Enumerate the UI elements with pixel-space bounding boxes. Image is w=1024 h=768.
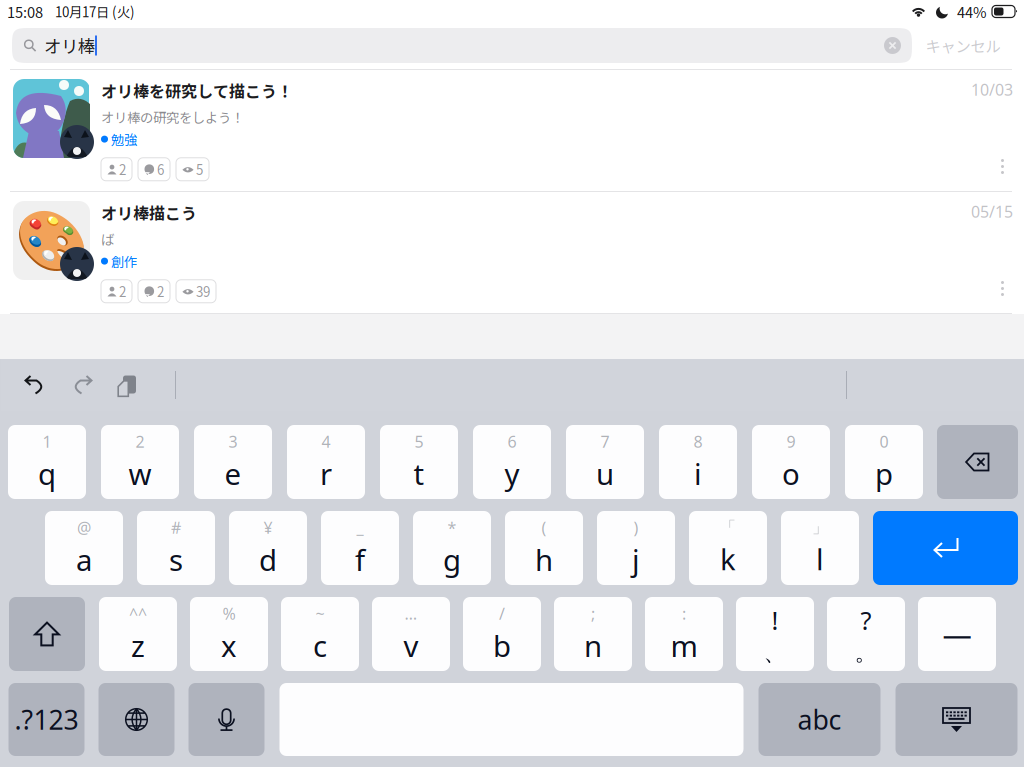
button[interactable]: :: [645, 597, 723, 671]
button[interactable]: Next keyboard: [98, 683, 174, 756]
button[interactable]: ¥: [229, 511, 307, 585]
staticText: 勉強: [111, 129, 137, 149]
button[interactable]: Return: [873, 511, 1018, 585]
staticText: ;: [591, 603, 595, 624]
button[interactable]: 9: [752, 425, 830, 499]
button[interactable]: Delete: [937, 425, 1018, 499]
staticText: キャンセル: [925, 34, 1000, 57]
button[interactable]: —: [918, 597, 996, 671]
staticText: s: [169, 540, 183, 579]
staticText: 9: [786, 431, 795, 452]
button[interactable]: 6: [473, 425, 551, 499]
staticText: 39: [196, 282, 210, 301]
staticText: オリ棒を研究して描こう！: [101, 79, 293, 102]
staticText: g: [443, 540, 461, 579]
staticText: 10月17日 (火): [55, 2, 135, 21]
staticText: !: [771, 603, 778, 637]
staticText: r: [320, 454, 332, 493]
button[interactable]: 0: [845, 425, 923, 499]
button[interactable]: 4: [287, 425, 365, 499]
button[interactable]: Paste: [114, 373, 133, 396]
staticText: 」: [812, 518, 828, 537]
button[interactable]: 5: [380, 425, 458, 499]
button[interactable]: ;: [554, 597, 632, 671]
staticText: w: [128, 454, 151, 493]
button[interactable]: ~: [281, 597, 359, 671]
button[interactable]: (: [505, 511, 583, 585]
button[interactable]: …: [372, 597, 450, 671]
button[interactable]: ^^: [99, 597, 177, 671]
staticText: @: [77, 517, 91, 538]
button[interactable]: 1: [8, 425, 86, 499]
staticText: 7: [600, 431, 609, 452]
staticText: ?: [860, 603, 871, 637]
staticText: a: [76, 540, 92, 579]
staticText: 、: [763, 639, 786, 667]
staticText: h: [535, 540, 553, 579]
staticText: p: [875, 454, 893, 493]
staticText: o: [782, 454, 800, 493]
button[interactable]: .?123: [8, 683, 84, 756]
button[interactable]: ?: [827, 597, 905, 671]
staticText: 5: [196, 160, 203, 179]
button[interactable]: 🎨: [0, 192, 1024, 313]
button[interactable]: Dictate: [188, 683, 264, 756]
staticText: 2: [135, 431, 144, 452]
button[interactable]: 」: [781, 511, 859, 585]
button[interactable]: %: [190, 597, 268, 671]
staticText: ): [633, 517, 638, 538]
staticText: e: [224, 454, 241, 493]
button[interactable]: 「: [689, 511, 767, 585]
button[interactable]: 2: [101, 425, 179, 499]
staticText: k: [720, 539, 736, 578]
staticText: 5: [414, 431, 423, 452]
staticText: i: [694, 454, 702, 493]
staticText: 2: [119, 282, 126, 301]
staticText: #: [171, 517, 181, 538]
button[interactable]: オリ棒: [12, 28, 912, 63]
button[interactable]: Redo: [69, 374, 93, 395]
staticText: 3: [228, 431, 237, 452]
staticText: t: [413, 454, 424, 493]
button[interactable]: Undo: [24, 374, 48, 395]
staticText: —: [942, 614, 971, 653]
staticText: 「: [720, 518, 736, 537]
staticText: (: [541, 517, 546, 538]
button[interactable]: ): [597, 511, 675, 585]
button[interactable]: /: [463, 597, 541, 671]
staticText: 2: [157, 282, 164, 301]
button[interactable]: *: [413, 511, 491, 585]
staticText: オリ棒の研究をしよう！: [101, 107, 244, 126]
button[interactable]: 8: [659, 425, 737, 499]
staticText: ~: [315, 603, 324, 624]
staticText: 。: [854, 639, 877, 667]
button[interactable]: _: [321, 511, 399, 585]
button[interactable]: Hide keyboard: [895, 683, 1017, 756]
button[interactable]: !: [736, 597, 814, 671]
staticText: 6: [157, 160, 164, 179]
button[interactable]: @: [45, 511, 123, 585]
button[interactable]: オリ棒を研究して描こう！: [0, 70, 1024, 191]
staticText: .?123: [14, 702, 78, 737]
button[interactable]: #: [137, 511, 215, 585]
button[interactable]: 3: [194, 425, 272, 499]
staticText: d: [259, 540, 277, 579]
staticText: …: [404, 603, 417, 624]
button[interactable]: 7: [566, 425, 644, 499]
staticText: %: [222, 603, 235, 624]
staticText: v: [403, 626, 418, 665]
staticText: ば: [101, 229, 114, 248]
button[interactable]: キャンセル: [912, 25, 1014, 65]
staticText: 15:08: [7, 1, 43, 22]
staticText: l: [816, 539, 824, 578]
staticText: 1: [42, 431, 51, 452]
button[interactable]: abc: [758, 683, 880, 756]
button[interactable]: Shift: [9, 597, 85, 671]
staticText: *: [447, 517, 456, 538]
staticText: 44%: [957, 1, 987, 22]
staticText: y: [504, 454, 519, 493]
staticText: b: [493, 626, 511, 665]
staticText: 10/03: [971, 79, 1013, 100]
staticText: 05/15: [971, 201, 1013, 222]
